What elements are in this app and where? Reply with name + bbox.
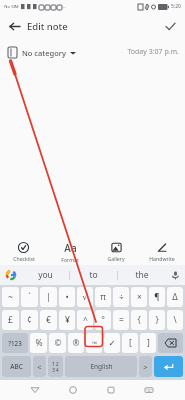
button[interactable]: Handwrite <box>139 239 185 265</box>
staticText: | <box>46 291 51 303</box>
button[interactable]: Aa <box>47 239 93 265</box>
staticText: Handwrite <box>149 255 175 262</box>
staticText: ~ <box>8 291 13 303</box>
button[interactable]: \ <box>167 310 183 330</box>
button[interactable]: Voice input <box>165 265 185 285</box>
staticText: 3 4 <box>52 367 59 373</box>
button[interactable]: Recents <box>103 382 119 398</box>
button[interactable]: Checklist <box>0 239 47 265</box>
staticText: Δ <box>172 291 178 303</box>
button[interactable]: © <box>49 333 66 353</box>
button[interactable]: ` <box>21 287 38 307</box>
staticText: ^ <box>83 314 88 326</box>
button[interactable]: No category <box>6 45 78 60</box>
staticText: 5:20 <box>171 3 181 10</box>
staticText: Today 3:07 p.m. <box>127 47 179 57</box>
button[interactable]: Google <box>0 265 22 285</box>
button[interactable]: ] <box>140 333 156 353</box>
button[interactable]: the <box>118 265 165 285</box>
button[interactable]: Gallery <box>93 239 139 265</box>
button[interactable]: Numbers <box>48 356 63 377</box>
staticText: you <box>38 269 53 281</box>
button[interactable]: Δ <box>167 287 183 307</box>
button[interactable]: ™ <box>86 333 102 353</box>
button[interactable]: ABC <box>2 356 31 377</box>
button[interactable]: Home <box>65 382 81 398</box>
staticText: > <box>143 362 148 372</box>
button[interactable]: % <box>30 333 47 353</box>
staticText: Format <box>61 256 79 263</box>
staticText: No SIM <box>4 4 19 10</box>
button[interactable]: = <box>113 310 129 330</box>
staticText: Edit note <box>27 20 68 33</box>
staticText: € <box>46 314 51 326</box>
staticText: to <box>89 269 98 281</box>
staticText: ABC <box>10 362 23 371</box>
staticText: English <box>90 362 113 371</box>
button[interactable]: π <box>95 287 111 307</box>
button[interactable]: × <box>131 287 147 307</box>
button[interactable]: € <box>40 310 57 330</box>
staticText: ÷ <box>119 291 124 303</box>
button[interactable]: ~ <box>2 287 19 307</box>
button[interactable]: | <box>40 287 57 307</box>
button[interactable]: ¢ <box>21 310 38 330</box>
staticText: ° <box>101 314 105 326</box>
button[interactable]: ® <box>68 333 84 353</box>
staticText: ·· <box>63 4 66 10</box>
staticText: ✓ <box>108 338 116 348</box>
staticText: ?123 <box>8 339 22 347</box>
staticText: ® <box>72 337 80 349</box>
button[interactable]: you <box>22 265 69 285</box>
button[interactable]: ✓ <box>104 333 120 353</box>
button[interactable]: } <box>149 310 165 330</box>
staticText: = <box>119 314 124 326</box>
staticText: [ <box>129 337 132 349</box>
button[interactable]: √ <box>77 287 93 307</box>
staticText: π <box>100 291 106 303</box>
staticText: No category <box>22 48 66 58</box>
button[interactable]: ¥ <box>59 310 75 330</box>
button[interactable]: > <box>139 356 152 377</box>
button[interactable]: English <box>65 356 137 377</box>
staticText: ` <box>28 291 31 303</box>
button[interactable]: Back <box>27 382 43 398</box>
button[interactable]: Save <box>161 17 179 35</box>
staticText: % <box>35 337 43 349</box>
button[interactable]: ° <box>95 310 111 330</box>
staticText: © <box>54 337 62 349</box>
staticText: × <box>137 291 142 303</box>
button[interactable]: ⌫ <box>158 333 183 353</box>
button[interactable]: • <box>59 287 75 307</box>
staticText: ¥ <box>65 314 70 326</box>
button[interactable]: Hide keyboard <box>141 382 157 398</box>
button[interactable]: [ <box>122 333 138 353</box>
staticText: £ <box>8 314 13 326</box>
staticText: Aa <box>64 241 77 255</box>
staticText: \ <box>173 314 177 326</box>
staticText: < <box>37 362 42 372</box>
button[interactable]: Back <box>5 17 23 35</box>
button[interactable]: £ <box>2 310 19 330</box>
staticText: ] <box>147 337 150 349</box>
button[interactable]: ¶ <box>149 287 165 307</box>
staticText: the <box>135 269 149 281</box>
button[interactable]: < <box>33 356 46 377</box>
staticText: Gallery <box>107 255 125 262</box>
staticText: Checklist <box>13 255 35 262</box>
button[interactable]: ^ <box>77 310 93 330</box>
staticText: 1 2 <box>52 361 59 367</box>
button[interactable]: { <box>131 310 147 330</box>
staticText: ™ <box>92 339 97 347</box>
button[interactable]: Enter <box>154 356 183 377</box>
button[interactable]: ÷ <box>113 287 129 307</box>
button[interactable]: ?123 <box>2 333 28 353</box>
staticText: √ <box>82 292 88 302</box>
staticText: } <box>155 314 159 326</box>
staticText: • <box>65 291 69 303</box>
staticText: ¶ <box>154 291 160 303</box>
button[interactable]: to <box>70 265 117 285</box>
staticText: { <box>137 314 141 326</box>
staticText: ¢ <box>27 314 32 326</box>
